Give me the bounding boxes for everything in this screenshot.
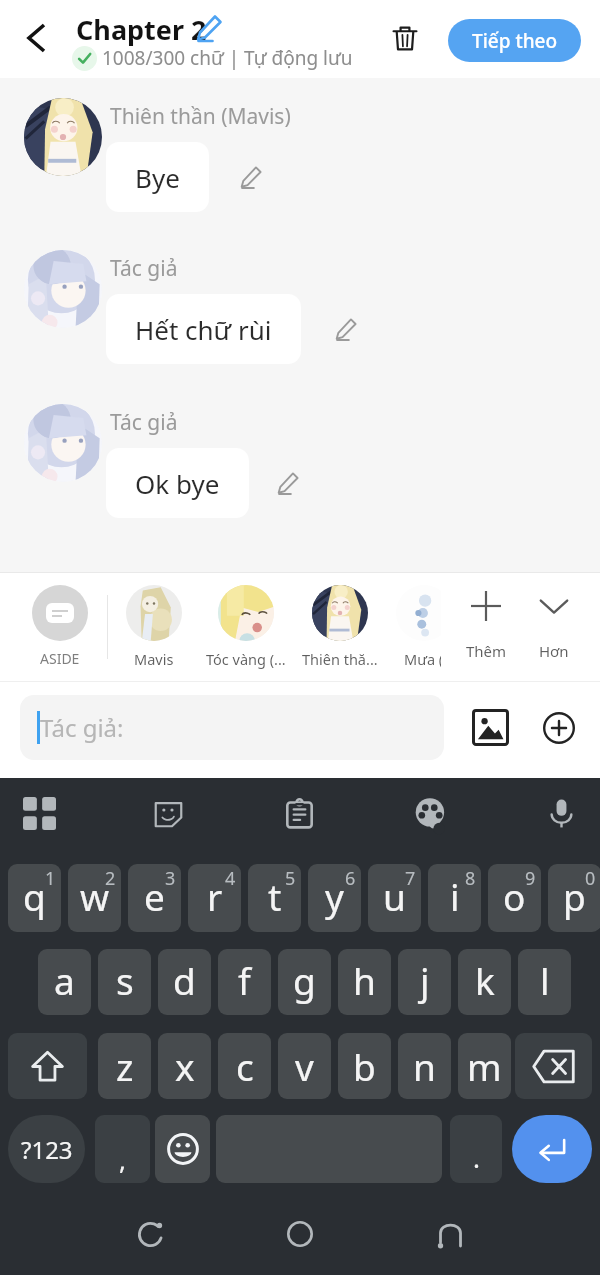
staticText: Ok bye [135,466,220,501]
button[interactable]: Mavis [112,585,196,669]
button[interactable]: k [458,949,511,1015]
staticText: c [236,1041,254,1091]
button[interactable]: Tóc vàng (... [204,585,288,669]
button[interactable]: h [338,949,391,1015]
staticText: 2 [105,866,116,891]
button[interactable]: Back [7,9,65,67]
button[interactable]: Stickers [144,789,192,837]
staticText: ?123 [21,1133,73,1166]
button[interactable]: Thiên thă... [298,585,382,669]
button[interactable]: Home [274,1208,326,1260]
button[interactable]: b [338,1033,391,1099]
staticText: 3 [165,866,176,891]
button[interactable]: Bye [106,142,209,212]
button[interactable]: Hết chữ rùi [106,294,301,364]
button[interactable]: ?123 [8,1115,85,1183]
button[interactable]: Enter [512,1115,592,1183]
button[interactable]: Avatar [24,404,102,482]
staticText: q [23,871,46,921]
button[interactable]: a [38,949,91,1015]
button[interactable]: s [98,949,151,1015]
button[interactable]: Back [424,1208,476,1260]
button[interactable]: ASIDE [24,585,96,668]
staticText: u [383,871,406,921]
staticText: 7 [405,866,416,891]
button[interactable]: Mưa ( [382,585,441,669]
button[interactable]: Voice input [537,789,585,837]
button[interactable]: Delete [378,11,432,65]
button[interactable]: Clipboard [275,789,323,837]
button[interactable]: Recent apps [124,1208,176,1260]
staticText: ASIDE [40,649,80,668]
button[interactable]: d [158,949,211,1015]
button[interactable]: Edit message [233,160,267,194]
staticText: m [467,1041,502,1091]
button[interactable]: t [248,864,301,932]
button[interactable]: Hơn [524,591,584,661]
button[interactable]: Edit message [328,312,362,346]
button[interactable]: Add [537,706,580,749]
button[interactable]: l [518,949,571,1015]
button[interactable]: n [398,1033,451,1099]
button[interactable]: Thêm [456,591,516,661]
button[interactable]: Emoji [155,1115,210,1183]
staticText: Bye [135,160,180,195]
button[interactable]: Ok bye [106,448,249,518]
button[interactable]: Shift [8,1033,87,1099]
staticText: v [295,1041,314,1091]
button[interactable]: , [95,1115,150,1183]
button[interactable]: u [368,864,421,932]
button[interactable]: x [158,1033,211,1099]
staticText: b [353,1041,376,1091]
button[interactable]: Tác giả: [20,695,444,760]
staticText: p [563,871,586,921]
staticText: 1 [45,866,56,891]
staticText: Tác giả [110,408,178,437]
staticText: Hết chữ rùi [135,312,272,347]
button[interactable]: i [428,864,481,932]
button[interactable]: v [278,1033,331,1099]
button[interactable]: Keyboard modes [15,789,63,837]
button[interactable]: z [98,1033,151,1099]
staticText: Mưa ( [404,649,441,669]
staticText: s [116,955,134,1005]
button[interactable]: f [218,949,271,1015]
button[interactable]: Tiếp theo [448,19,581,62]
button[interactable]: Edit message [270,466,304,500]
button[interactable]: e [128,864,181,932]
staticText: 0 [585,866,596,891]
staticText: a [54,955,75,1005]
button[interactable]: o [488,864,541,932]
staticText: k [475,955,495,1005]
button[interactable]: g [278,949,331,1015]
button[interactable]: m [458,1033,511,1099]
staticText: Mavis [134,649,174,669]
button[interactable]: y [308,864,361,932]
staticText: t [268,871,282,921]
staticText: Tác giả: [40,711,124,744]
staticText: g [293,955,316,1005]
button[interactable]: r [188,864,241,932]
staticText: 4 [225,866,236,891]
staticText: Hơn [539,641,569,661]
button[interactable]: Avatar [24,98,102,176]
staticText: x [175,1041,195,1091]
staticText: l [540,955,550,1005]
button[interactable]: Theme [406,789,454,837]
staticText: Thêm [466,641,507,661]
button[interactable]: w [68,864,121,932]
button[interactable]: Insert image [468,705,513,750]
staticText: h [353,955,376,1005]
button[interactable]: Avatar [24,250,102,328]
button[interactable]: j [398,949,451,1015]
staticText: z [116,1041,134,1091]
button[interactable]: Backspace [515,1033,592,1099]
button[interactable]: c [218,1033,271,1099]
staticText: Chapter 2 [76,11,207,48]
button[interactable]: p [548,864,600,932]
button[interactable]: q [8,864,61,932]
staticText: e [144,871,165,921]
button[interactable]: . [450,1115,502,1183]
staticText: Tác giả [110,254,178,283]
